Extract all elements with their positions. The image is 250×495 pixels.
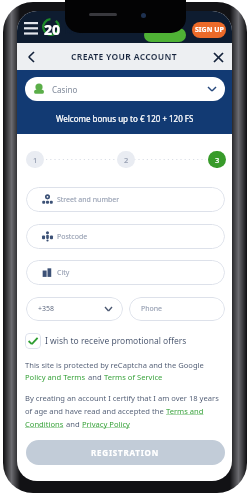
staticText: 3 [215,155,220,165]
button[interactable]: Back [21,47,41,67]
staticText: 1 [33,155,38,165]
button[interactable]: 3 [208,151,226,168]
button[interactable]: I wish to receive promotional offers [25,332,187,349]
staticText: I wish to receive promotional offers [45,335,187,347]
staticText: BET [65,22,85,37]
staticText: Policy and Terms [25,372,86,382]
staticText: Terms of Service [104,372,163,382]
button[interactable]: 2 [117,151,135,168]
staticText: Postcode [57,232,88,242]
staticText: SIGN UP [195,25,224,35]
staticText: Welcome bonus up to € 120 + 120 FS [56,113,194,124]
staticText: Conditions [25,419,64,429]
staticText: REGISTRATION [91,447,160,458]
staticText: Street and number [57,195,120,205]
button[interactable]: Postcode [26,224,225,249]
staticText: Phone [141,304,163,314]
button[interactable]: Close [208,47,228,67]
staticText: Terms and [166,406,204,416]
button[interactable]: REGISTRATION [26,440,225,465]
staticText: 2 [124,155,129,165]
staticText: +358 [38,304,55,314]
staticText: CREATE YOUR ACCOUNT [71,51,177,63]
staticText: This site is protected by reCaptcha and … [25,360,204,370]
button[interactable]: +358 [26,297,123,321]
staticText: Casino [52,84,78,95]
staticText: and [86,372,104,382]
staticText: of age and have read and accepted the [25,406,166,416]
staticText: and [64,419,82,429]
button[interactable]: Casino [25,77,225,101]
button[interactable]: Phone [129,297,225,321]
staticText: City [57,268,70,278]
staticText: By creating an account I certify that I … [25,393,219,403]
button[interactable]: Menu [23,21,39,36]
button[interactable]: City [26,260,225,285]
staticText: Privacy Policy [82,419,130,429]
button[interactable]: SIGN UP [192,22,226,38]
button[interactable]: Street and number [26,187,225,212]
button[interactable]: 1 [26,151,44,168]
staticText: 20 [44,20,61,39]
